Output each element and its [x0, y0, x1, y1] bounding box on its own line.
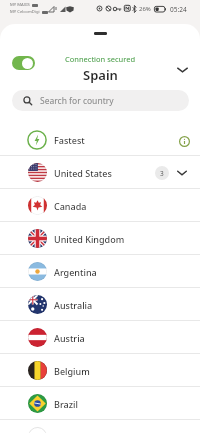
staticText: Search for country [40, 95, 114, 107]
button[interactable] [179, 136, 190, 147]
button[interactable] [177, 170, 187, 176]
button[interactable]: Argentina [0, 255, 200, 288]
staticText: Brazil [54, 398, 78, 410]
staticText: 05:24 [170, 5, 187, 14]
button[interactable]: Canada [0, 189, 200, 222]
staticText: 26% [139, 5, 151, 13]
staticText: Fastest [54, 134, 85, 146]
staticText: MY CelcomDigi [10, 9, 40, 15]
button[interactable]: United States [0, 156, 200, 189]
button[interactable]: Brazil [0, 387, 200, 420]
staticText: Connection secured [65, 54, 135, 64]
staticText: Australia [54, 299, 93, 311]
staticText: Belgium [54, 365, 90, 377]
staticText: Argentina [54, 266, 97, 278]
staticText: MY MAXIS [10, 2, 30, 8]
button[interactable]: Belgium [0, 354, 200, 387]
staticText: United States [54, 167, 112, 179]
button[interactable] [12, 56, 35, 70]
staticText: United Kingdom [54, 233, 125, 245]
button[interactable] [177, 67, 188, 73]
button[interactable]: Spain [83, 66, 118, 84]
button[interactable]: Australia [0, 288, 200, 321]
button[interactable]: Austria [0, 321, 200, 354]
staticText: Canada [54, 200, 87, 212]
button[interactable]: United Kingdom [0, 222, 200, 255]
button[interactable]: Search for country [12, 90, 189, 111]
button[interactable]: Fastest [0, 123, 200, 156]
staticText: Austria [54, 332, 85, 344]
staticText: 3 [160, 169, 164, 178]
